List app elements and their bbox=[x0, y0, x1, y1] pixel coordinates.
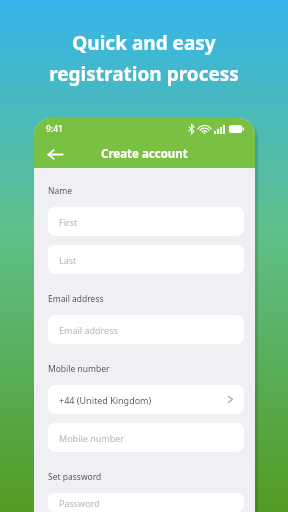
staticText: First bbox=[59, 216, 78, 228]
staticText: Set password bbox=[48, 471, 102, 483]
staticText: registration process bbox=[49, 61, 239, 87]
staticText: 9:41 bbox=[46, 123, 63, 135]
staticText: Create account bbox=[101, 146, 188, 162]
staticText: Password bbox=[59, 497, 100, 509]
staticText: +44 (United Kingdom) bbox=[59, 394, 227, 406]
button[interactable]: Mobile number bbox=[48, 423, 244, 452]
button[interactable]: Last bbox=[48, 245, 244, 274]
button[interactable]: Email address bbox=[48, 315, 244, 344]
button[interactable]: +44 (United Kingdom) bbox=[48, 385, 244, 414]
staticText: Email address bbox=[48, 293, 104, 305]
staticText: Name bbox=[48, 185, 72, 197]
button[interactable]: Password bbox=[48, 493, 244, 512]
staticText: Last bbox=[59, 254, 77, 266]
button[interactable]: First bbox=[48, 207, 244, 236]
staticText: Mobile number bbox=[48, 363, 110, 375]
staticText: Email address bbox=[59, 324, 118, 336]
staticText: Quick and easy bbox=[72, 30, 216, 56]
staticText: Mobile number bbox=[59, 432, 125, 444]
button[interactable]: Back bbox=[42, 141, 68, 167]
